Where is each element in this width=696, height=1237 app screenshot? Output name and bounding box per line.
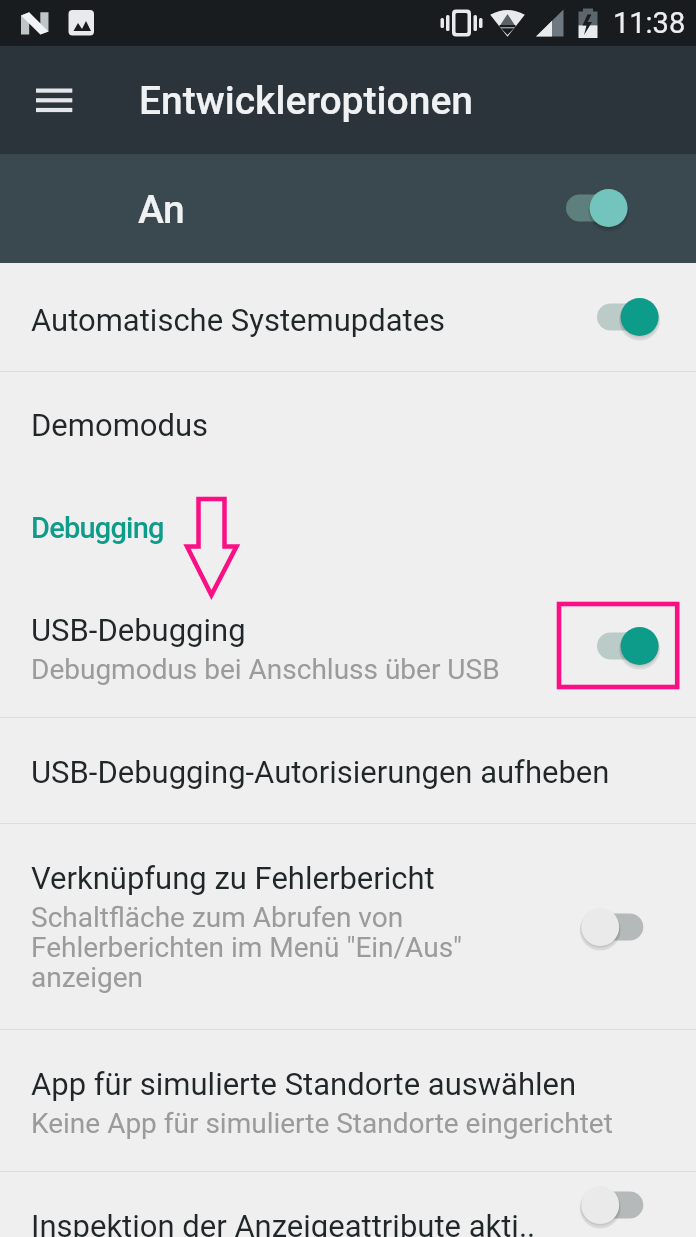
- button[interactable]: Inspektion der Anzeigeattribute akti..: [0, 1172, 696, 1237]
- staticText: An: [138, 187, 185, 233]
- button[interactable]: USB-Debugging-Autorisierungen aufheben: [0, 718, 696, 823]
- staticText: Keine App für simulierte Standorte einge…: [31, 1107, 613, 1140]
- staticText: Inspektion der Anzeigeattribute akti..: [31, 1208, 536, 1237]
- staticText: Entwickleroptionen: [139, 78, 474, 124]
- staticText: USB-Debugging-Autorisierungen aufheben: [31, 754, 610, 790]
- staticText: Verknüpfung zu Fehlerbericht: [31, 860, 435, 896]
- button[interactable]: An: [0, 154, 696, 263]
- button[interactable]: App für simulierte Standorte auswählen: [0, 1030, 696, 1171]
- button[interactable]: USB-Debugging: [0, 575, 696, 717]
- staticText: App für simulierte Standorte auswählen: [31, 1066, 577, 1102]
- button[interactable]: Navigationsmenü öffnen: [22, 68, 86, 132]
- button[interactable]: Demomodus: [0, 372, 696, 477]
- staticText: USB-Debugging: [31, 612, 246, 648]
- staticText: Debugging: [31, 511, 164, 545]
- staticText: Debugmodus bei Anschluss über USB: [31, 653, 500, 686]
- staticText: Automatische Systemupdates: [31, 302, 446, 338]
- staticText: 11:38: [613, 6, 686, 40]
- button[interactable]: Verknüpfung zu Fehlerbericht: [0, 824, 696, 1029]
- button[interactable]: Automatische Systemupdates: [0, 263, 696, 371]
- staticText: Schaltfläche zum Abrufen von Fehlerberic…: [31, 901, 463, 994]
- staticText: Demomodus: [31, 407, 209, 443]
